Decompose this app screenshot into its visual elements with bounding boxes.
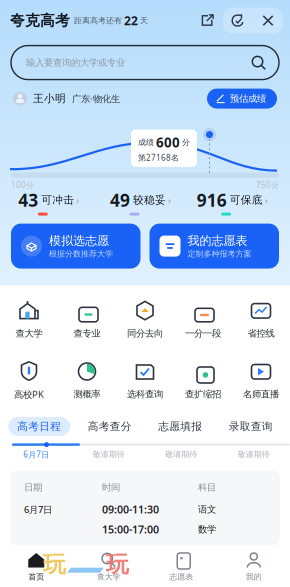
button[interactable]: 916: [186, 186, 278, 218]
staticText: 750分: [256, 180, 279, 190]
staticText: 可保底: [227, 193, 263, 207]
button[interactable]: 同分去向: [116, 300, 174, 339]
staticText: 广东·物化生: [66, 92, 120, 105]
staticText: 玩: [43, 551, 66, 578]
button[interactable]: 名师直播: [232, 360, 290, 400]
staticText: 输入要查询的大学或专业: [26, 57, 125, 68]
button[interactable]: 高考日程: [4, 414, 74, 438]
staticText: 高考日程: [17, 420, 61, 433]
staticText: 查大学: [97, 572, 121, 582]
button[interactable]: 查大学: [72, 545, 145, 587]
button[interactable]: 模拟选志愿: [11, 224, 140, 269]
staticText: 22: [124, 13, 138, 28]
staticText: 选科查询: [127, 388, 163, 400]
staticText: 成绩: [138, 137, 156, 147]
button[interactable]: 输入要查询的大学或专业: [0, 42, 290, 80]
staticText: 录取查询: [229, 420, 273, 433]
staticText: 数学: [198, 524, 216, 535]
staticText: 名师直播: [243, 388, 279, 400]
staticText: 玩: [106, 551, 129, 578]
button[interactable]: 查专业: [58, 300, 116, 339]
staticText: 敬请期待: [165, 449, 197, 459]
button[interactable]: 省控线: [232, 300, 290, 339]
button[interactable]: 43: [3, 186, 95, 218]
button[interactable]: 查大学: [0, 300, 58, 339]
staticText: 6月7日: [24, 503, 52, 516]
button[interactable]: 高考查分: [74, 414, 145, 438]
button[interactable]: 选科查询: [116, 360, 174, 400]
staticText: 志愿填报: [158, 420, 202, 433]
staticText: 预估成绩: [230, 93, 266, 104]
staticText: ›: [166, 194, 171, 206]
staticText: 夸克高考: [10, 12, 70, 30]
staticText: 09:00-11:30: [102, 502, 159, 516]
button[interactable]: 预估成绩: [207, 89, 277, 109]
staticText: 定制多种报考方案: [187, 249, 251, 259]
staticText: 600: [156, 134, 180, 151]
staticText: 日期: [24, 482, 42, 493]
button[interactable]: 我的志愿表: [149, 224, 279, 269]
staticText: 查专业: [73, 328, 100, 339]
staticText: ›: [74, 194, 79, 206]
staticText: 49: [110, 189, 130, 212]
staticText: 916: [197, 189, 227, 212]
button[interactable]: 首页: [0, 545, 72, 587]
button[interactable]: 查扩缩招: [174, 360, 232, 400]
staticText: 语文: [198, 504, 216, 515]
staticText: ›: [263, 194, 268, 206]
staticText: 省控线: [247, 328, 274, 339]
button[interactable]: 录取查询: [215, 414, 286, 438]
staticText: 首页: [28, 572, 44, 582]
button[interactable]: 一分一段: [174, 300, 232, 339]
button[interactable]: 关闭: [253, 8, 283, 34]
staticText: 志愿表: [169, 572, 193, 582]
staticText: 43: [18, 189, 38, 212]
button[interactable]: 分享: [193, 8, 223, 34]
staticText: 天: [138, 16, 148, 25]
staticText: 查大学: [15, 328, 42, 339]
button[interactable]: 高校PK: [0, 360, 58, 400]
staticText: 科目: [198, 482, 216, 493]
staticText: 敬请期待: [238, 449, 270, 459]
button[interactable]: 我的: [217, 545, 290, 587]
staticText: 敬请期待: [93, 449, 125, 459]
button[interactable]: 49: [95, 186, 186, 218]
staticText: 时间: [102, 482, 120, 493]
button[interactable]: 志愿表: [145, 545, 217, 587]
staticText: 高校PK: [14, 388, 44, 400]
staticText: 6月7日: [23, 449, 49, 460]
staticText: 分: [180, 137, 190, 147]
staticText: 我的: [246, 572, 262, 582]
staticText: 15:00-17:00: [102, 522, 159, 536]
staticText: 第27168名: [138, 152, 179, 163]
button[interactable]: 刷新: [223, 8, 253, 34]
button[interactable]: 测概率: [58, 360, 116, 400]
staticText: 王小明: [27, 92, 66, 105]
staticText: 模拟选志愿: [49, 233, 109, 248]
staticText: 一分一段: [185, 328, 221, 339]
staticText: 查扩缩招: [185, 388, 221, 400]
staticText: 高考查分: [88, 420, 132, 433]
staticText: 我的志愿表: [187, 233, 247, 248]
staticText: 可冲击: [38, 193, 74, 207]
staticText: 较稳妥: [130, 193, 166, 207]
staticText: 同分去向: [127, 328, 163, 339]
staticText: 根据分数推荐大学: [49, 249, 113, 259]
button[interactable]: 志愿填报: [145, 414, 215, 438]
staticText: 距离高考还有: [70, 16, 124, 25]
staticText: 100分: [11, 180, 34, 190]
staticText: 测概率: [73, 388, 100, 400]
